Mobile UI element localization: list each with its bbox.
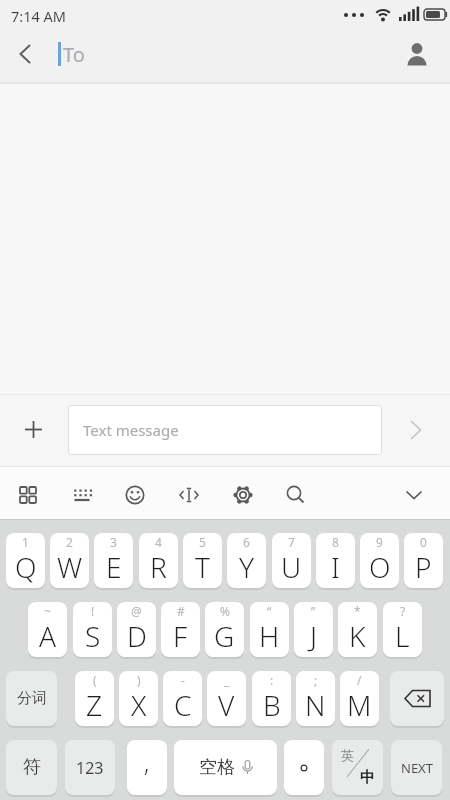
button[interactable]: 1	[6, 533, 45, 588]
staticText: 123	[76, 757, 104, 779]
button[interactable]: 123	[65, 740, 115, 795]
button[interactable]	[12, 479, 44, 511]
staticText: K	[349, 617, 366, 655]
staticText: X	[131, 686, 147, 724]
staticText: N	[305, 686, 326, 724]
button[interactable]: :	[252, 671, 291, 726]
staticText: 符	[23, 756, 41, 779]
button[interactable]	[66, 479, 98, 511]
staticText: S	[85, 617, 101, 655]
button[interactable]	[173, 479, 205, 511]
staticText: ,	[144, 747, 150, 778]
staticText: L	[395, 617, 410, 655]
staticText: 9	[376, 534, 383, 550]
button[interactable]	[400, 415, 430, 445]
staticText: U	[281, 548, 302, 586]
button[interactable]: %	[205, 602, 244, 657]
staticText: P	[415, 548, 432, 586]
button[interactable]	[398, 479, 430, 511]
staticText: O	[369, 548, 391, 586]
staticText: E	[106, 548, 122, 586]
staticText: M	[347, 686, 372, 724]
button[interactable]	[284, 740, 324, 795]
staticText: 5	[199, 534, 206, 550]
staticText: Z	[86, 686, 103, 724]
staticText: 7	[288, 534, 295, 550]
staticText: Text message	[83, 420, 179, 440]
button[interactable]: 空格	[174, 740, 277, 795]
button[interactable]: /	[340, 671, 379, 726]
staticText: ”	[311, 603, 316, 619]
button[interactable]	[280, 479, 312, 511]
staticText: :	[270, 672, 274, 688]
staticText: 0	[420, 534, 427, 550]
button[interactable]	[402, 38, 432, 68]
staticText: %	[220, 603, 230, 619]
staticText: ?	[400, 603, 406, 619]
button[interactable]: *	[338, 602, 377, 657]
staticText: R	[150, 548, 167, 586]
staticText: B	[263, 686, 281, 724]
staticText: ;	[314, 672, 318, 688]
button[interactable]: Text message	[68, 405, 382, 455]
staticText: 分词	[17, 689, 47, 708]
staticText: G	[214, 617, 235, 655]
staticText: _	[224, 672, 230, 688]
button[interactable]	[8, 40, 36, 68]
button[interactable]	[390, 671, 444, 726]
button[interactable]: 符	[6, 740, 57, 795]
staticText: )	[137, 672, 141, 688]
staticText: F	[173, 617, 188, 655]
button[interactable]: -	[163, 671, 202, 726]
button[interactable]	[227, 479, 259, 511]
button[interactable]	[119, 479, 151, 511]
button[interactable]: 9	[360, 533, 399, 588]
staticText: H	[259, 617, 280, 655]
button[interactable]: ;	[296, 671, 335, 726]
button[interactable]: 2	[50, 533, 89, 588]
staticText: (	[93, 672, 97, 688]
button[interactable]: “	[250, 602, 289, 657]
staticText: Q	[15, 548, 37, 586]
staticText: -	[181, 672, 185, 688]
button[interactable]: 0	[404, 533, 443, 588]
staticText: 1	[22, 534, 29, 550]
staticText: J	[310, 617, 318, 655]
button[interactable]: !	[73, 602, 112, 657]
button[interactable]: @	[117, 602, 156, 657]
button[interactable]	[20, 416, 47, 443]
button[interactable]: 英	[332, 740, 383, 795]
staticText: 4	[155, 534, 162, 550]
button[interactable]: 7	[272, 533, 311, 588]
staticText: #	[177, 603, 185, 619]
button[interactable]: NEXT	[391, 740, 442, 795]
button[interactable]: ”	[294, 602, 333, 657]
button[interactable]: 6	[227, 533, 266, 588]
staticText: A	[39, 617, 57, 655]
button[interactable]: 3	[94, 533, 133, 588]
button[interactable]: (	[75, 671, 114, 726]
staticText: “	[267, 603, 272, 619]
staticText: 2	[66, 534, 73, 550]
staticText: 3	[110, 534, 117, 550]
button[interactable]: 分词	[6, 671, 57, 726]
staticText: I	[331, 548, 340, 586]
button[interactable]: 4	[139, 533, 178, 588]
button[interactable]: _	[207, 671, 246, 726]
button[interactable]: ?	[383, 602, 422, 657]
button[interactable]: 8	[316, 533, 355, 588]
staticText: D	[127, 617, 147, 655]
button[interactable]: 5	[183, 533, 222, 588]
staticText: W	[57, 548, 83, 586]
staticText: @	[131, 603, 142, 619]
button[interactable]: ~	[28, 602, 67, 657]
staticText: 8	[332, 534, 339, 550]
staticText: 6	[243, 534, 250, 550]
staticText: 空格	[199, 756, 235, 779]
staticText: V	[218, 686, 235, 724]
button[interactable]: #	[161, 602, 200, 657]
button[interactable]: )	[119, 671, 158, 726]
staticText: *	[354, 603, 361, 619]
button[interactable]: ,	[127, 740, 167, 795]
staticText: NEXT	[401, 759, 433, 777]
